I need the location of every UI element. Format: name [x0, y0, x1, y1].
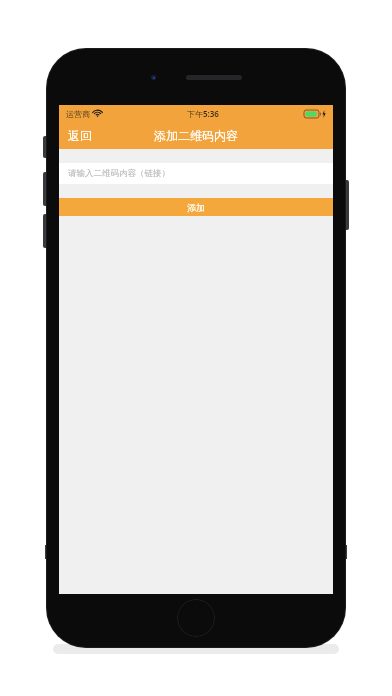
staticText: 添加 [187, 202, 205, 213]
staticText: 运营商 [66, 109, 90, 119]
button[interactable]: 返回 [59, 122, 102, 149]
staticText: 请输入二维码内容（链接） [68, 168, 170, 179]
staticText: 下午5:36 [187, 108, 219, 119]
button[interactable]: 添加 [59, 198, 333, 216]
button[interactable]: 请输入二维码内容（链接） [59, 163, 333, 184]
staticText: 返回 [68, 128, 92, 143]
staticText: 添加二维码内容 [154, 128, 238, 143]
